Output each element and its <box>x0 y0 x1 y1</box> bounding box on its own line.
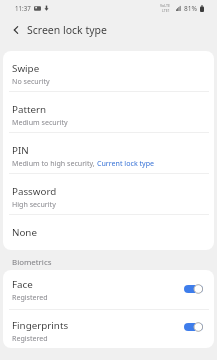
staticText: VoLTE <box>160 3 171 8</box>
button[interactable]: Navigate up <box>3 17 29 43</box>
staticText: Biometrics <box>12 257 52 268</box>
button[interactable]: None <box>3 215 214 250</box>
staticText: Fingerprints <box>12 319 69 332</box>
staticText: Face <box>12 278 33 291</box>
staticText: 81% <box>184 4 198 13</box>
staticText: None <box>12 226 37 239</box>
staticText: Medium security <box>12 117 68 127</box>
button[interactable]: Fingerprints <box>3 310 214 348</box>
staticText: PIN <box>12 144 29 157</box>
staticText: Registered <box>12 292 48 302</box>
button[interactable]: Pattern <box>3 92 214 132</box>
button[interactable]: Toggle on <box>184 283 203 295</box>
staticText: Swipe <box>12 62 40 75</box>
staticText: Registered <box>12 333 48 343</box>
staticText: No security <box>12 76 50 86</box>
staticText: Current lock type <box>97 158 155 168</box>
staticText: LTE1 <box>162 8 170 13</box>
button[interactable]: Toggle on <box>184 321 203 333</box>
staticText: Medium to high security, <box>12 158 97 168</box>
button[interactable]: Face <box>3 270 214 309</box>
staticText: Password <box>12 185 57 198</box>
button[interactable]: Swipe <box>3 51 214 91</box>
button[interactable]: Password <box>3 174 214 214</box>
button[interactable]: PIN <box>3 133 214 173</box>
staticText: 11:37 <box>15 4 31 12</box>
staticText: Screen lock type <box>27 23 107 37</box>
staticText: Pattern <box>12 103 47 116</box>
staticText: High security <box>12 199 56 209</box>
